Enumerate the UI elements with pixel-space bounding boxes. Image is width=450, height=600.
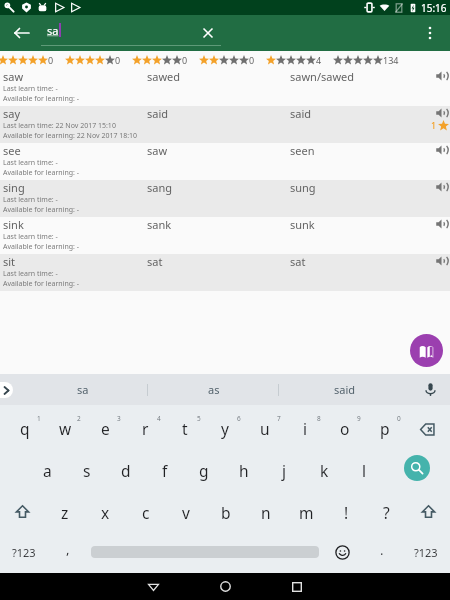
button[interactable]: r xyxy=(125,405,165,447)
button[interactable]: Pronounce xyxy=(436,144,448,156)
button[interactable]: b xyxy=(206,489,246,531)
button[interactable]: k xyxy=(304,447,344,489)
staticText: Last learn time: - xyxy=(3,232,58,242)
staticText: 6 xyxy=(237,414,241,423)
button[interactable]: Clear search xyxy=(196,21,220,45)
staticText: 0 xyxy=(115,54,121,66)
button[interactable]: Back xyxy=(117,573,189,600)
button[interactable]: w xyxy=(45,405,85,447)
staticText: z xyxy=(61,502,69,523)
button[interactable]: j xyxy=(264,447,304,489)
staticText: g xyxy=(199,460,209,481)
staticText: 1 xyxy=(37,414,41,423)
button[interactable]: sa xyxy=(18,374,148,405)
button[interactable]: ! xyxy=(326,489,366,531)
staticText: sank xyxy=(147,217,172,232)
button[interactable]: m xyxy=(286,489,326,531)
button[interactable]: v xyxy=(166,489,206,531)
button[interactable]: y xyxy=(205,405,245,447)
button[interactable]: as xyxy=(148,374,279,405)
staticText: sit xyxy=(3,254,16,269)
staticText: n xyxy=(261,502,271,523)
staticText: saw xyxy=(147,143,168,158)
staticText: a xyxy=(43,460,52,481)
button[interactable]: , xyxy=(48,531,88,573)
button[interactable]: 0 xyxy=(132,51,199,69)
staticText: Last learn time: - xyxy=(3,84,58,94)
button[interactable]: said xyxy=(279,374,410,405)
staticText: 0 xyxy=(249,54,255,66)
staticText: ! xyxy=(344,502,349,523)
button[interactable]: 0 xyxy=(65,51,132,69)
button[interactable]: z xyxy=(44,489,85,531)
button[interactable]: Voice input xyxy=(410,374,450,405)
staticText: 134 xyxy=(383,54,399,66)
button[interactable]: Backspace xyxy=(405,405,450,447)
button[interactable]: sit xyxy=(0,254,450,291)
staticText: saw xyxy=(3,69,24,84)
button[interactable]: x xyxy=(85,489,126,531)
button[interactable]: see xyxy=(0,143,450,180)
button[interactable]: Shift xyxy=(406,489,450,531)
button[interactable]: c xyxy=(126,489,166,531)
button[interactable]: i xyxy=(285,405,325,447)
button[interactable]: Pronounce xyxy=(436,107,448,119)
button[interactable]: t xyxy=(165,405,205,447)
button[interactable]: sink xyxy=(0,217,450,254)
staticText: Available for learning: - xyxy=(3,279,80,289)
staticText: p xyxy=(380,418,390,439)
staticText: Available for learning: 22 Nov 2017 18:1… xyxy=(3,131,138,141)
button[interactable]: Open dictionary xyxy=(410,334,443,367)
button[interactable]: e xyxy=(85,405,125,447)
button[interactable]: l xyxy=(344,447,384,489)
button[interactable]: Emoji xyxy=(322,531,362,573)
button[interactable]: ?123 xyxy=(0,531,48,573)
button[interactable]: sa xyxy=(41,18,221,46)
button[interactable]: Pronounce xyxy=(436,255,448,267)
button[interactable]: . xyxy=(362,531,402,573)
staticText: h xyxy=(239,460,249,481)
button[interactable]: Pronounce xyxy=(436,218,448,230)
button[interactable]: q xyxy=(4,405,45,447)
button[interactable]: p xyxy=(365,405,405,447)
button[interactable]: Search xyxy=(384,447,450,489)
button[interactable]: Space xyxy=(88,531,322,573)
button[interactable]: a xyxy=(28,447,67,489)
button[interactable]: f xyxy=(145,447,184,489)
button[interactable]: saw xyxy=(0,69,450,106)
button[interactable]: sing xyxy=(0,180,450,217)
button[interactable]: u xyxy=(245,405,285,447)
button[interactable]: Recent apps xyxy=(261,573,333,600)
button[interactable]: g xyxy=(184,447,224,489)
button[interactable]: ?123 xyxy=(402,531,450,573)
button[interactable]: o xyxy=(325,405,365,447)
button[interactable]: Pronounce xyxy=(436,181,448,193)
staticText: u xyxy=(260,418,270,439)
button[interactable]: 0 xyxy=(0,51,65,69)
button[interactable]: s xyxy=(67,447,106,489)
staticText: said xyxy=(290,106,312,121)
staticText: sink xyxy=(3,217,24,232)
button[interactable]: Shift xyxy=(0,489,44,531)
staticText: 15:16 xyxy=(421,1,447,15)
staticText: c xyxy=(142,502,150,523)
staticText: 9 xyxy=(357,414,361,423)
staticText: sing xyxy=(3,180,25,195)
staticText: 0 xyxy=(48,54,54,66)
button[interactable]: More options xyxy=(418,21,442,45)
button[interactable]: n xyxy=(246,489,286,531)
button[interactable]: 4 xyxy=(266,51,333,69)
button[interactable]: 0 xyxy=(199,51,266,69)
button[interactable]: Pronounce xyxy=(436,70,448,82)
staticText: see xyxy=(3,143,21,158)
button[interactable]: Show more suggestions xyxy=(0,382,13,398)
button[interactable]: Navigate back xyxy=(8,19,36,47)
button[interactable]: Home xyxy=(189,573,261,600)
button[interactable]: h xyxy=(224,447,264,489)
button[interactable]: 134 xyxy=(333,51,403,69)
button[interactable]: d xyxy=(106,447,145,489)
button[interactable]: say xyxy=(0,106,450,143)
staticText: 0 xyxy=(182,54,188,66)
button[interactable]: ? xyxy=(366,489,406,531)
staticText: 3 xyxy=(117,414,121,423)
